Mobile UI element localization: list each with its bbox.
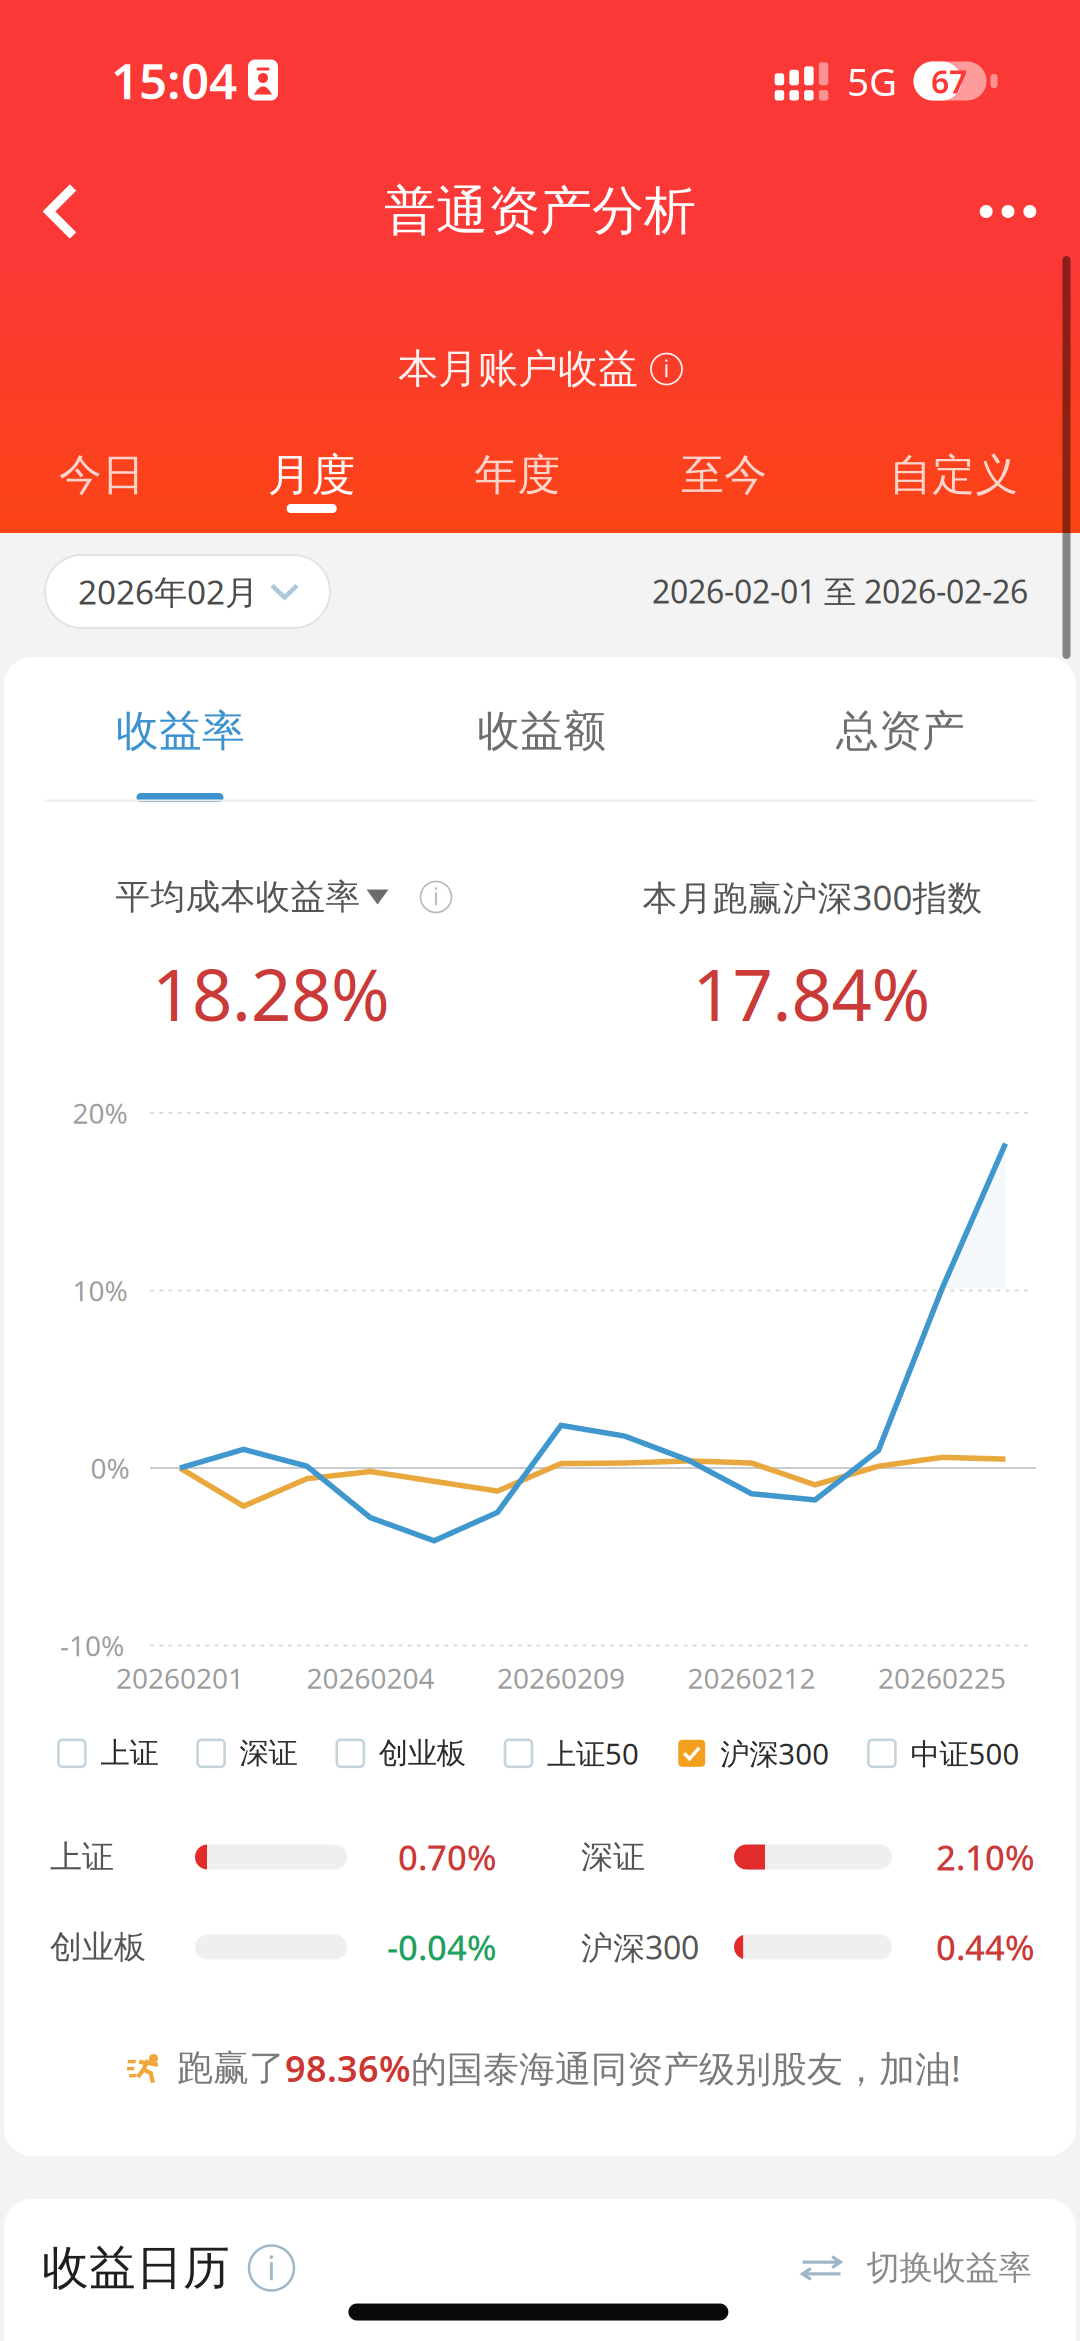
staticText: 20% [72, 1094, 127, 1132]
button[interactable]: 收益日历 [42, 2229, 294, 2307]
staticText: 年度 [474, 449, 560, 501]
staticText: 98.36% [285, 2044, 411, 2092]
staticText: 2026-02-01 至 2026-02-26 [652, 570, 1028, 612]
staticText: 5G [847, 55, 897, 107]
button[interactable]: 上证 [58, 1735, 158, 1771]
button[interactable]: 本月账户收益 [398, 336, 682, 401]
staticText: 月度 [267, 448, 355, 502]
button[interactable]: 深证 [198, 1735, 298, 1771]
staticText: 0.70% [398, 1834, 497, 1880]
button[interactable]: 切换收益率 [802, 2237, 1031, 2298]
staticText: 2026年02月 [78, 569, 258, 614]
staticText: 沪深300 [720, 1734, 829, 1773]
staticText: 的国泰海通同资产级别股友，加油! [411, 2044, 961, 2092]
button[interactable]: 今日 [41, 437, 163, 513]
button[interactable]: More options [956, 173, 1060, 250]
staticText: i [433, 881, 439, 912]
button[interactable]: 创业板 [337, 1735, 466, 1771]
staticText: 20260209 [497, 1659, 625, 1697]
staticText: 17.84% [692, 947, 930, 1040]
staticText: 20260204 [306, 1659, 434, 1697]
button[interactable]: 沪深300 [678, 1734, 829, 1773]
staticText: 中证500 [910, 1734, 1019, 1773]
staticText: 收益日历 [42, 2239, 230, 2297]
staticText: i [267, 2245, 276, 2289]
staticText: 沪深300 [581, 1926, 699, 1968]
staticText: 上证 [50, 1837, 114, 1877]
staticText: 收益率 [116, 705, 245, 757]
staticText: 切换收益率 [866, 2247, 1031, 2288]
staticText: 普通资产分析 [384, 179, 696, 243]
button[interactable]: 总资产 [796, 679, 1005, 783]
staticText: 本月跑赢沪深300指数 [642, 874, 982, 920]
staticText: 2.10% [936, 1834, 1035, 1880]
staticText: 0.44% [936, 1924, 1035, 1970]
staticText: 20260201 [116, 1659, 244, 1697]
staticText: 67 [931, 60, 967, 102]
button[interactable]: 2026年02月 [45, 555, 330, 628]
button[interactable]: 自定义 [871, 437, 1036, 513]
staticText: 18.28% [152, 947, 390, 1040]
staticText: 10% [72, 1272, 127, 1309]
button[interactable]: 上证50 [505, 1734, 639, 1773]
staticText: 20260225 [878, 1659, 1006, 1697]
staticText: 深证 [240, 1735, 298, 1771]
staticText: 收益额 [477, 705, 606, 757]
staticText: 深证 [581, 1837, 645, 1877]
staticText: 上证50 [547, 1734, 639, 1773]
button[interactable]: 中证500 [868, 1734, 1019, 1773]
staticText: i [663, 353, 669, 384]
staticText: 总资产 [836, 705, 965, 757]
staticText: 创业板 [379, 1735, 466, 1771]
button[interactable]: Back [19, 161, 103, 261]
staticText: 至今 [681, 449, 767, 501]
staticText: 平均成本收益率 [115, 876, 360, 918]
staticText: -0.04% [387, 1924, 497, 1970]
staticText: 今日 [59, 449, 145, 501]
staticText: 20260212 [687, 1659, 815, 1697]
staticText: 本月账户收益 [398, 344, 638, 393]
staticText: 0% [90, 1449, 129, 1487]
button[interactable]: 收益额 [437, 679, 646, 783]
staticText: 自定义 [889, 449, 1018, 501]
button[interactable]: 年度 [456, 437, 578, 513]
button[interactable]: 收益率 [76, 679, 285, 783]
button[interactable]: 月度 [249, 436, 373, 514]
staticText: 上证 [100, 1735, 158, 1771]
staticText: 跑赢了 [177, 2046, 285, 2090]
staticText: -10% [60, 1627, 124, 1664]
button[interactable]: 平均成本收益率 [115, 876, 451, 918]
button[interactable]: 至今 [663, 437, 785, 513]
staticText: 15:04 [111, 47, 237, 113]
staticText: 创业板 [50, 1927, 146, 1967]
